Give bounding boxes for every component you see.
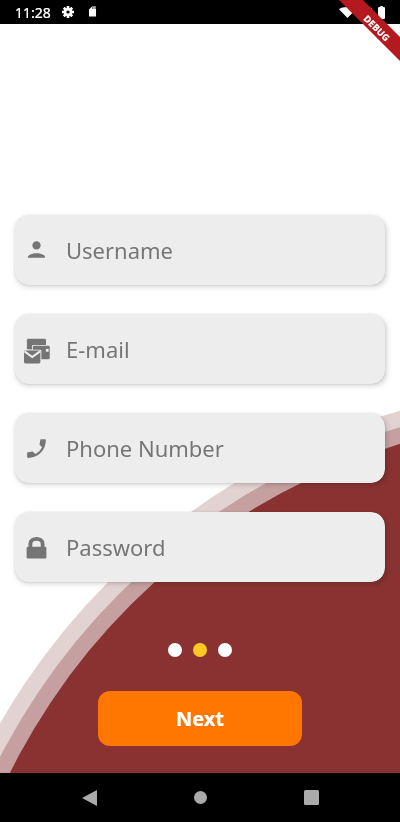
button[interactable]: E-mail: [15, 314, 385, 384]
staticText: Username: [66, 235, 174, 265]
staticText: 11:28: [15, 3, 51, 22]
button[interactable]: Phone Number: [15, 413, 385, 483]
button[interactable]: Recent apps: [256, 773, 367, 822]
button[interactable]: Next: [98, 691, 302, 746]
staticText: Phone Number: [66, 433, 224, 463]
button[interactable]: Home: [145, 773, 256, 822]
staticText: Next: [176, 705, 225, 732]
button[interactable]: Back: [33, 773, 145, 822]
staticText: Password: [66, 532, 166, 562]
staticText: E-mail: [66, 334, 130, 364]
button[interactable]: Password: [15, 512, 385, 582]
staticText: DEBUG: [362, 12, 393, 44]
button[interactable]: Username: [15, 215, 385, 285]
